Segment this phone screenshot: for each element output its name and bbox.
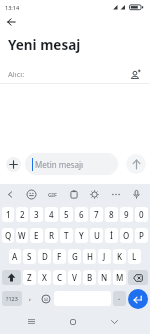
staticText: 0 [139,209,144,220]
button[interactable]: Q [2,228,14,243]
staticText: V [72,272,77,283]
button[interactable]: S [23,249,36,264]
staticText: . [118,291,121,302]
staticText: İ [110,230,113,241]
button[interactable]: , [23,288,38,309]
button[interactable] [84,184,105,204]
staticText: U [94,230,100,241]
staticText: L [132,251,137,262]
button[interactable] [7,18,16,26]
staticText: 5 [64,209,69,220]
button[interactable]: O [120,228,133,243]
button[interactable]: . [113,291,126,306]
staticText: J [103,251,106,262]
staticText: R [49,230,55,241]
button[interactable]: L [128,249,141,264]
button[interactable]: 4 [45,207,58,222]
button[interactable]: F [53,249,66,264]
button[interactable]: H [83,249,96,264]
button[interactable]: 2 [16,207,28,222]
staticText: M [116,272,124,283]
staticText: O [123,230,130,241]
button[interactable]: 1 [2,207,14,222]
button[interactable]: J [98,249,111,264]
staticText: 9 [124,209,129,220]
button[interactable]: K [113,249,126,264]
button[interactable]: C [53,270,66,285]
staticText: S [27,251,32,262]
button[interactable] [105,184,126,204]
button[interactable]: D [38,249,51,264]
staticText: , [29,291,32,302]
button[interactable]: Metin mesajı [25,153,118,175]
staticText: Alıcı: [8,69,25,79]
button[interactable]: 0 [135,207,148,222]
staticText: Y [79,230,84,241]
button[interactable] [126,184,147,204]
button[interactable]: B [83,270,96,285]
staticText: X [42,272,47,283]
staticText: 13:14 [5,4,20,11]
button[interactable] [126,154,146,174]
staticText: T [64,230,69,241]
staticText: GIF [48,191,57,198]
button[interactable] [130,69,141,80]
staticText: 8 [109,209,114,220]
staticText: B [87,272,93,283]
button[interactable]: ?123 [2,291,22,306]
button[interactable]: N [98,270,111,285]
staticText: 4 [49,209,54,220]
staticText: 6 [79,209,84,220]
button[interactable]: V [68,270,81,285]
staticText: W [18,230,26,241]
staticText: Metin mesajı [35,159,84,170]
button[interactable] [28,319,35,324]
button[interactable] [38,288,53,309]
button[interactable] [0,184,21,204]
button[interactable]: GIF [42,184,63,204]
button[interactable]: Z [23,270,36,285]
button[interactable]: M [113,270,126,285]
button[interactable]: X [38,270,51,285]
staticText: K [117,251,123,262]
button[interactable] [128,270,148,285]
button[interactable]: G [68,249,81,264]
staticText: C [57,272,63,283]
button[interactable]: Alıcı: [0,58,150,84]
button[interactable] [21,184,42,204]
button[interactable] [2,270,21,285]
button[interactable]: P [135,228,148,243]
staticText: G [72,251,78,262]
button[interactable]: 6 [75,207,88,222]
staticText: E [34,230,39,241]
staticText: 7 [94,209,99,220]
button[interactable] [111,320,118,324]
button[interactable]: Y [75,228,88,243]
button[interactable]: 8 [105,207,118,222]
button[interactable] [128,289,148,309]
button[interactable] [63,184,84,204]
button[interactable]: 3 [30,207,43,222]
staticText: H [87,251,93,262]
button[interactable]: U [90,228,103,243]
button[interactable]: T [60,228,73,243]
button[interactable]: 5 [60,207,73,222]
staticText: F [57,251,62,262]
staticText: 3 [34,209,39,220]
button[interactable]: 9 [120,207,133,222]
button[interactable] [6,157,21,172]
staticText: 2 [20,209,25,220]
staticText: Yeni mesaj [8,36,81,54]
button[interactable]: E [30,228,43,243]
staticText: N [101,272,108,283]
staticText: Z [27,272,32,283]
button[interactable]: A [9,249,21,264]
staticText: Q [5,230,12,241]
button[interactable]: W [16,228,28,243]
button[interactable]: 7 [90,207,103,222]
staticText: D [42,251,48,262]
button[interactable]: R [45,228,58,243]
button[interactable]: İ [105,228,118,243]
button[interactable] [70,319,76,325]
